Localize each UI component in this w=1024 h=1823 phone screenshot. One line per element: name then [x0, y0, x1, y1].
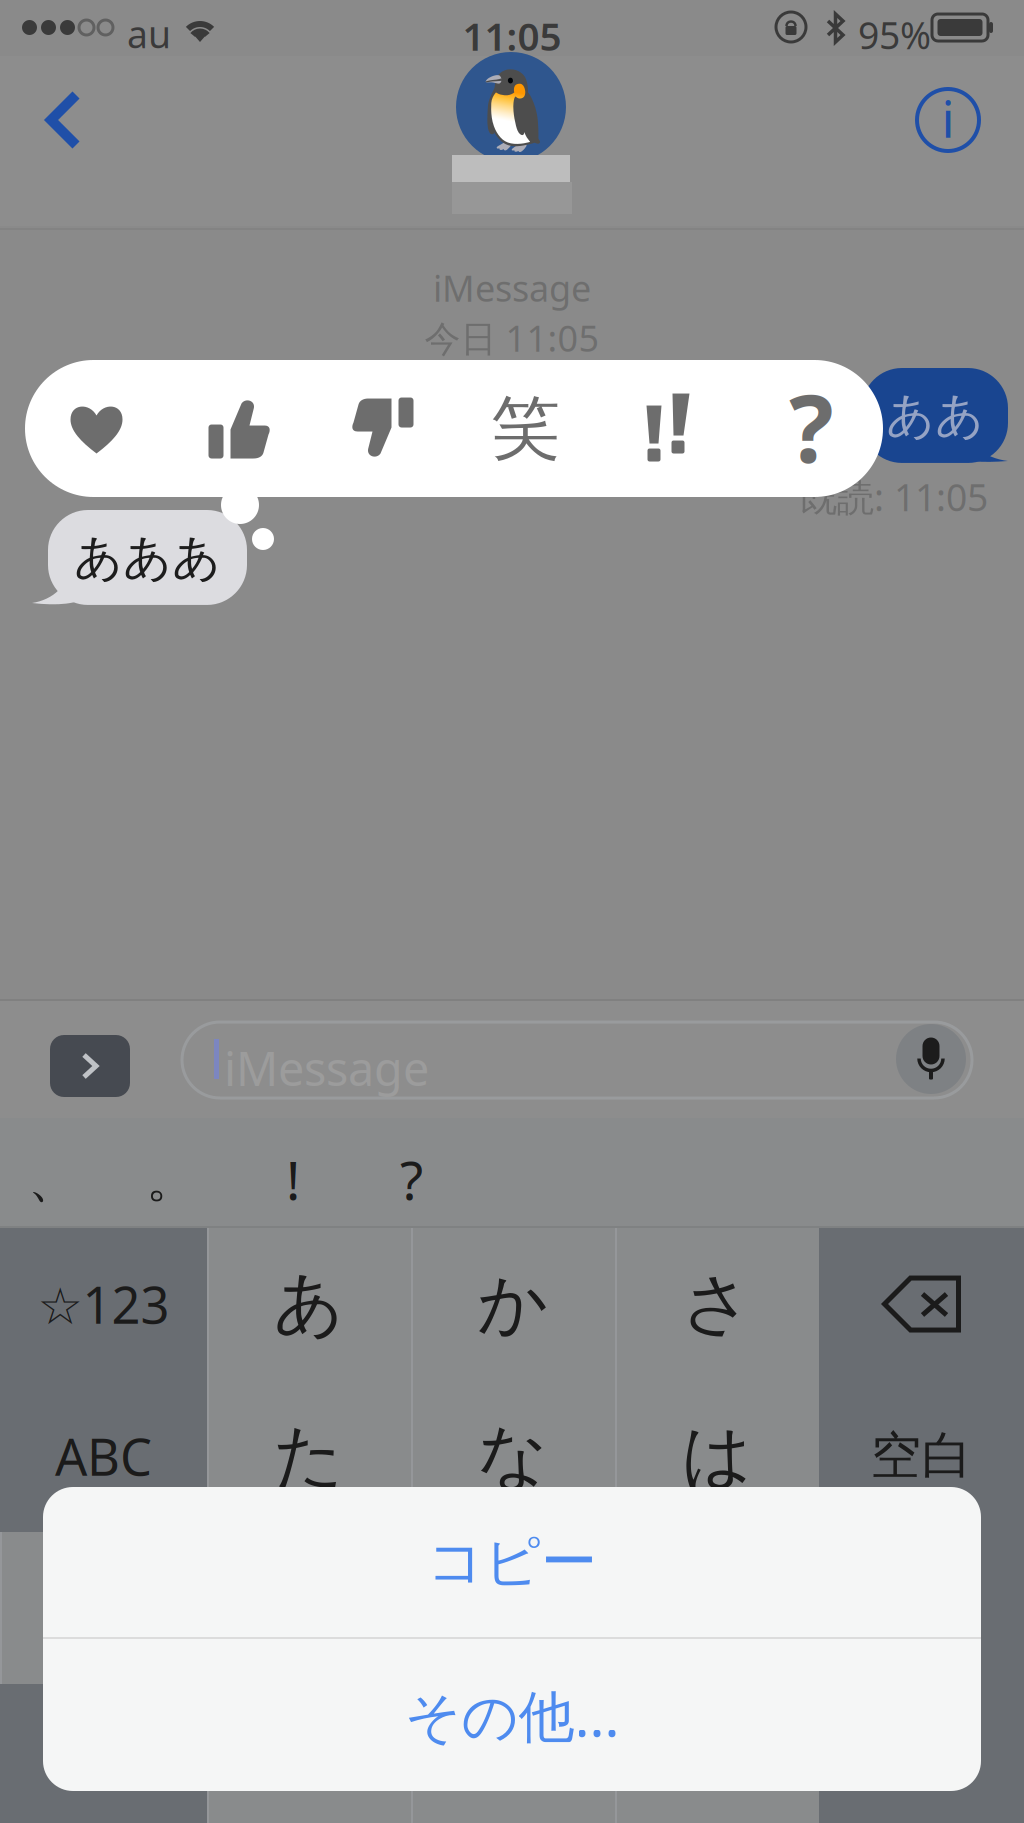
staticText: な — [477, 1413, 548, 1499]
staticText: か — [477, 1261, 548, 1347]
button[interactable]: Key — [0, 1532, 207, 1684]
button[interactable]: Haha — [454, 360, 597, 497]
button[interactable]: た — [207, 1380, 411, 1532]
button[interactable]: は — [615, 1380, 819, 1532]
button[interactable]: Key — [411, 1532, 615, 1684]
button[interactable]: あ — [207, 1228, 411, 1380]
button[interactable]: か — [411, 1228, 615, 1380]
staticText: iMessage — [224, 1037, 429, 1099]
staticText: た — [273, 1413, 344, 1499]
staticText: 11:05 — [462, 10, 561, 61]
staticText: 、 — [28, 1148, 79, 1210]
staticText: 。 — [146, 1148, 197, 1210]
staticText: 空白 — [870, 1425, 972, 1487]
staticText: 既読: 11:05 — [800, 472, 988, 522]
staticText: ? — [400, 1144, 423, 1215]
staticText: さ — [681, 1261, 752, 1347]
staticText: 笑 — [491, 386, 560, 471]
button[interactable]: Emphasize — [597, 360, 740, 497]
button[interactable]: コピー — [43, 1487, 981, 1637]
staticText: 🐧 — [465, 67, 561, 155]
staticText: ABC — [55, 1422, 152, 1490]
staticText: コピー — [427, 1528, 597, 1596]
button[interactable]: ABC — [0, 1380, 207, 1532]
button[interactable]: Like — [168, 360, 311, 497]
staticText: iMessage — [433, 264, 591, 312]
button[interactable]: ☆123 — [0, 1228, 207, 1380]
staticText: i — [941, 84, 954, 152]
staticText: あ — [273, 1261, 344, 1347]
staticText: au — [127, 9, 171, 59]
staticText: ☆123 — [37, 1270, 169, 1338]
staticText: あああ — [74, 528, 221, 587]
button[interactable]: Key — [0, 1684, 207, 1823]
button[interactable]: Key — [615, 1684, 819, 1823]
button[interactable]: Apps — [42, 1028, 138, 1104]
button[interactable]: Dictate — [894, 1022, 968, 1096]
button[interactable]: な — [411, 1380, 615, 1532]
button[interactable]: Key — [411, 1684, 615, 1823]
button[interactable]: Key — [819, 1532, 1024, 1684]
staticText: は — [681, 1413, 752, 1499]
button[interactable]: その他... — [43, 1639, 981, 1791]
button[interactable]: Love — [25, 360, 168, 497]
button[interactable]: Delete — [819, 1228, 1024, 1380]
button[interactable]: Details — [898, 70, 998, 170]
staticText: ? — [789, 364, 834, 488]
button[interactable]: 空白 — [819, 1380, 1024, 1532]
button[interactable]: Dislike — [311, 360, 454, 497]
button[interactable]: Key — [207, 1684, 411, 1823]
staticText: 今日 11:05 — [424, 314, 599, 362]
button[interactable]: Key — [819, 1684, 1024, 1823]
button[interactable]: Back — [14, 66, 114, 176]
staticText: ! — [286, 1144, 300, 1215]
staticText: ああ — [886, 386, 984, 445]
button[interactable]: Question — [740, 360, 883, 497]
button[interactable]: さ — [615, 1228, 819, 1380]
staticText: その他... — [404, 1678, 619, 1752]
staticText: 95% — [858, 10, 931, 60]
